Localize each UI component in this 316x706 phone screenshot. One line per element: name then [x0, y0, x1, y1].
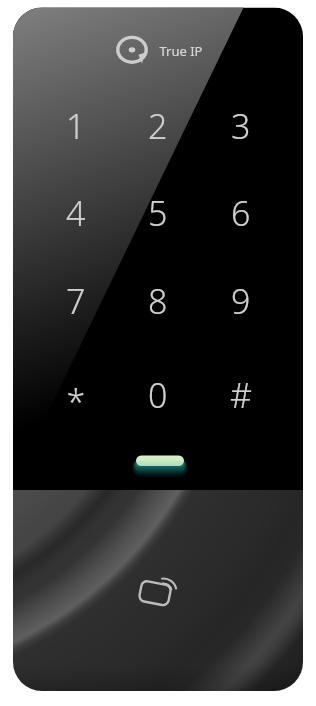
button[interactable]: True IP access control keypad: [0, 0, 316, 706]
